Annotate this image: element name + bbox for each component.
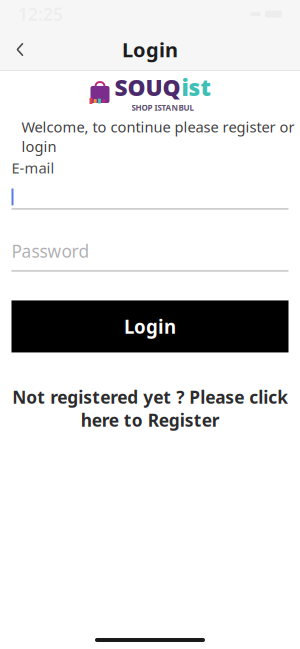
button[interactable]: Login [11,300,288,352]
staticText: Login [124,314,176,339]
staticText: Password [11,239,89,262]
staticText: Not registered yet ? Please click here t… [12,385,288,431]
button[interactable]: Back [0,28,40,70]
button[interactable]: Not registered yet ? Please click here t… [11,385,288,431]
staticText: Welcome, to continue please register or … [21,117,294,156]
staticText: SHOP ISTANBUL [131,102,193,113]
staticText: SOUQ [114,72,180,102]
staticText: ist [181,72,210,102]
staticText: 12:25 [18,2,63,25]
staticText: Login [122,36,178,63]
staticText: E-mail [11,158,54,177]
